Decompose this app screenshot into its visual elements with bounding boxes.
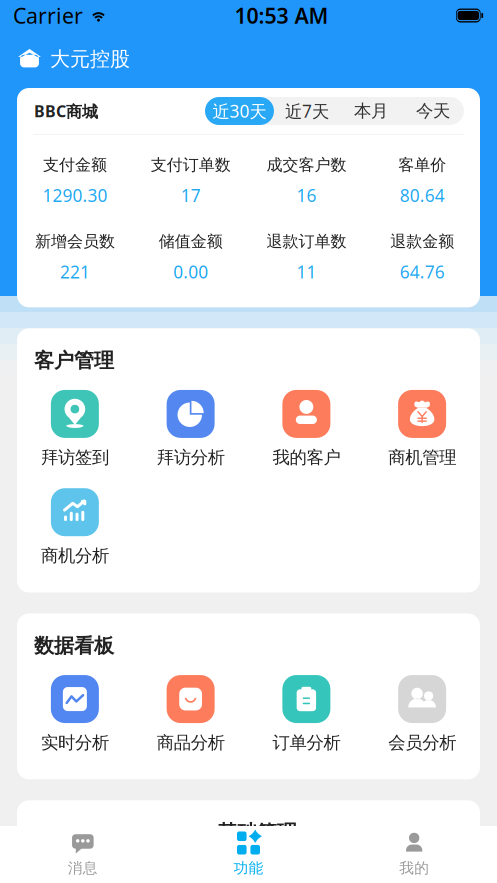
- button[interactable]: 大元控股: [0, 31, 497, 87]
- staticText: 客户管理: [34, 348, 114, 373]
- button[interactable]: 我的: [331, 826, 497, 883]
- staticText: 商机分析: [41, 545, 109, 566]
- staticText: Carrier: [13, 1, 83, 30]
- button[interactable]: 消息: [0, 826, 166, 883]
- button[interactable]: 商机分析: [17, 488, 133, 566]
- staticText: 本月: [354, 100, 388, 122]
- staticText: 11: [296, 260, 316, 283]
- staticText: 拜访签到: [41, 447, 109, 468]
- button[interactable]: 拜访签到: [17, 390, 133, 468]
- staticText: 17: [181, 184, 201, 207]
- button[interactable]: 拜访分析: [133, 390, 249, 468]
- staticText: 64.76: [400, 260, 445, 283]
- staticText: 退款订单数: [266, 232, 346, 251]
- staticText: 订单分析: [272, 732, 340, 753]
- staticText: 商机管理: [388, 447, 456, 468]
- staticText: 新增会员数: [35, 232, 115, 251]
- button[interactable]: 实时分析: [17, 675, 133, 753]
- staticText: 近7天: [285, 99, 329, 122]
- staticText: 10:53 AM: [234, 1, 328, 30]
- staticText: 会员分析: [388, 732, 456, 753]
- staticText: 消息: [68, 859, 98, 877]
- staticText: 221: [60, 260, 90, 283]
- button[interactable]: 会员分析: [364, 675, 480, 753]
- staticText: 客单价: [398, 155, 446, 175]
- staticText: 功能: [233, 859, 263, 877]
- staticText: 商品分析: [157, 732, 225, 753]
- staticText: 支付订单数: [151, 155, 231, 175]
- staticText: 大元控股: [50, 47, 130, 71]
- staticText: 0.00: [173, 260, 208, 283]
- staticText: 支付金额: [43, 155, 107, 175]
- staticText: 我的: [399, 859, 429, 877]
- button[interactable]: 我的客户: [248, 390, 364, 468]
- staticText: 基础管理: [217, 820, 297, 845]
- staticText: BBC商城: [34, 100, 98, 122]
- staticText: 退款金额: [390, 232, 454, 251]
- button[interactable]: 商机管理: [364, 390, 480, 468]
- button[interactable]: 功能: [166, 826, 331, 883]
- staticText: 我的客户: [272, 447, 340, 468]
- button[interactable]: 近30天: [205, 97, 274, 125]
- staticText: 实时分析: [41, 732, 109, 753]
- staticText: 拜访分析: [157, 447, 225, 468]
- staticText: 1290.30: [42, 184, 107, 207]
- button[interactable]: 今天: [402, 97, 464, 125]
- button[interactable]: 订单分析: [248, 675, 364, 753]
- staticText: 成交客户数: [266, 155, 346, 175]
- button[interactable]: 本月: [340, 97, 402, 125]
- button[interactable]: 商品分析: [133, 675, 249, 753]
- staticText: 80.64: [400, 184, 445, 207]
- staticText: 数据看板: [34, 633, 114, 658]
- staticText: 近30天: [212, 99, 266, 122]
- staticText: 今天: [416, 100, 450, 122]
- button[interactable]: 近7天: [274, 97, 340, 125]
- staticText: 储值金额: [159, 232, 223, 251]
- staticText: 16: [296, 184, 316, 207]
